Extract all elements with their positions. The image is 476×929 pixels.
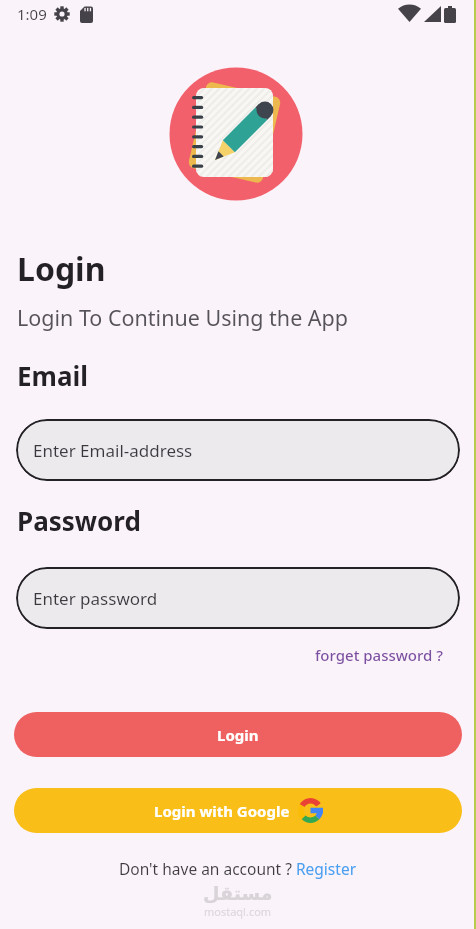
- staticText: 1:09: [17, 4, 47, 24]
- staticText: Email: [17, 358, 89, 393]
- staticText: Login: [217, 725, 259, 745]
- staticText: mostaql.com: [204, 904, 272, 919]
- button[interactable]: Don't have an account ? Register: [119, 858, 357, 879]
- button[interactable]: Login: [14, 712, 462, 757]
- staticText: Enter Email-address: [33, 439, 193, 462]
- staticText: Login with Google: [154, 801, 290, 821]
- staticText: مستقل: [203, 882, 273, 904]
- button[interactable]: forget password ?: [315, 645, 443, 665]
- staticText: Password: [17, 503, 141, 538]
- button[interactable]: Enter Email-address: [16, 419, 460, 481]
- staticText: Login: [17, 247, 106, 291]
- button[interactable]: Enter password: [16, 567, 460, 629]
- staticText: Enter password: [33, 587, 158, 610]
- staticText: Login To Continue Using the App: [17, 303, 349, 332]
- button[interactable]: Login with Google: [14, 788, 462, 833]
